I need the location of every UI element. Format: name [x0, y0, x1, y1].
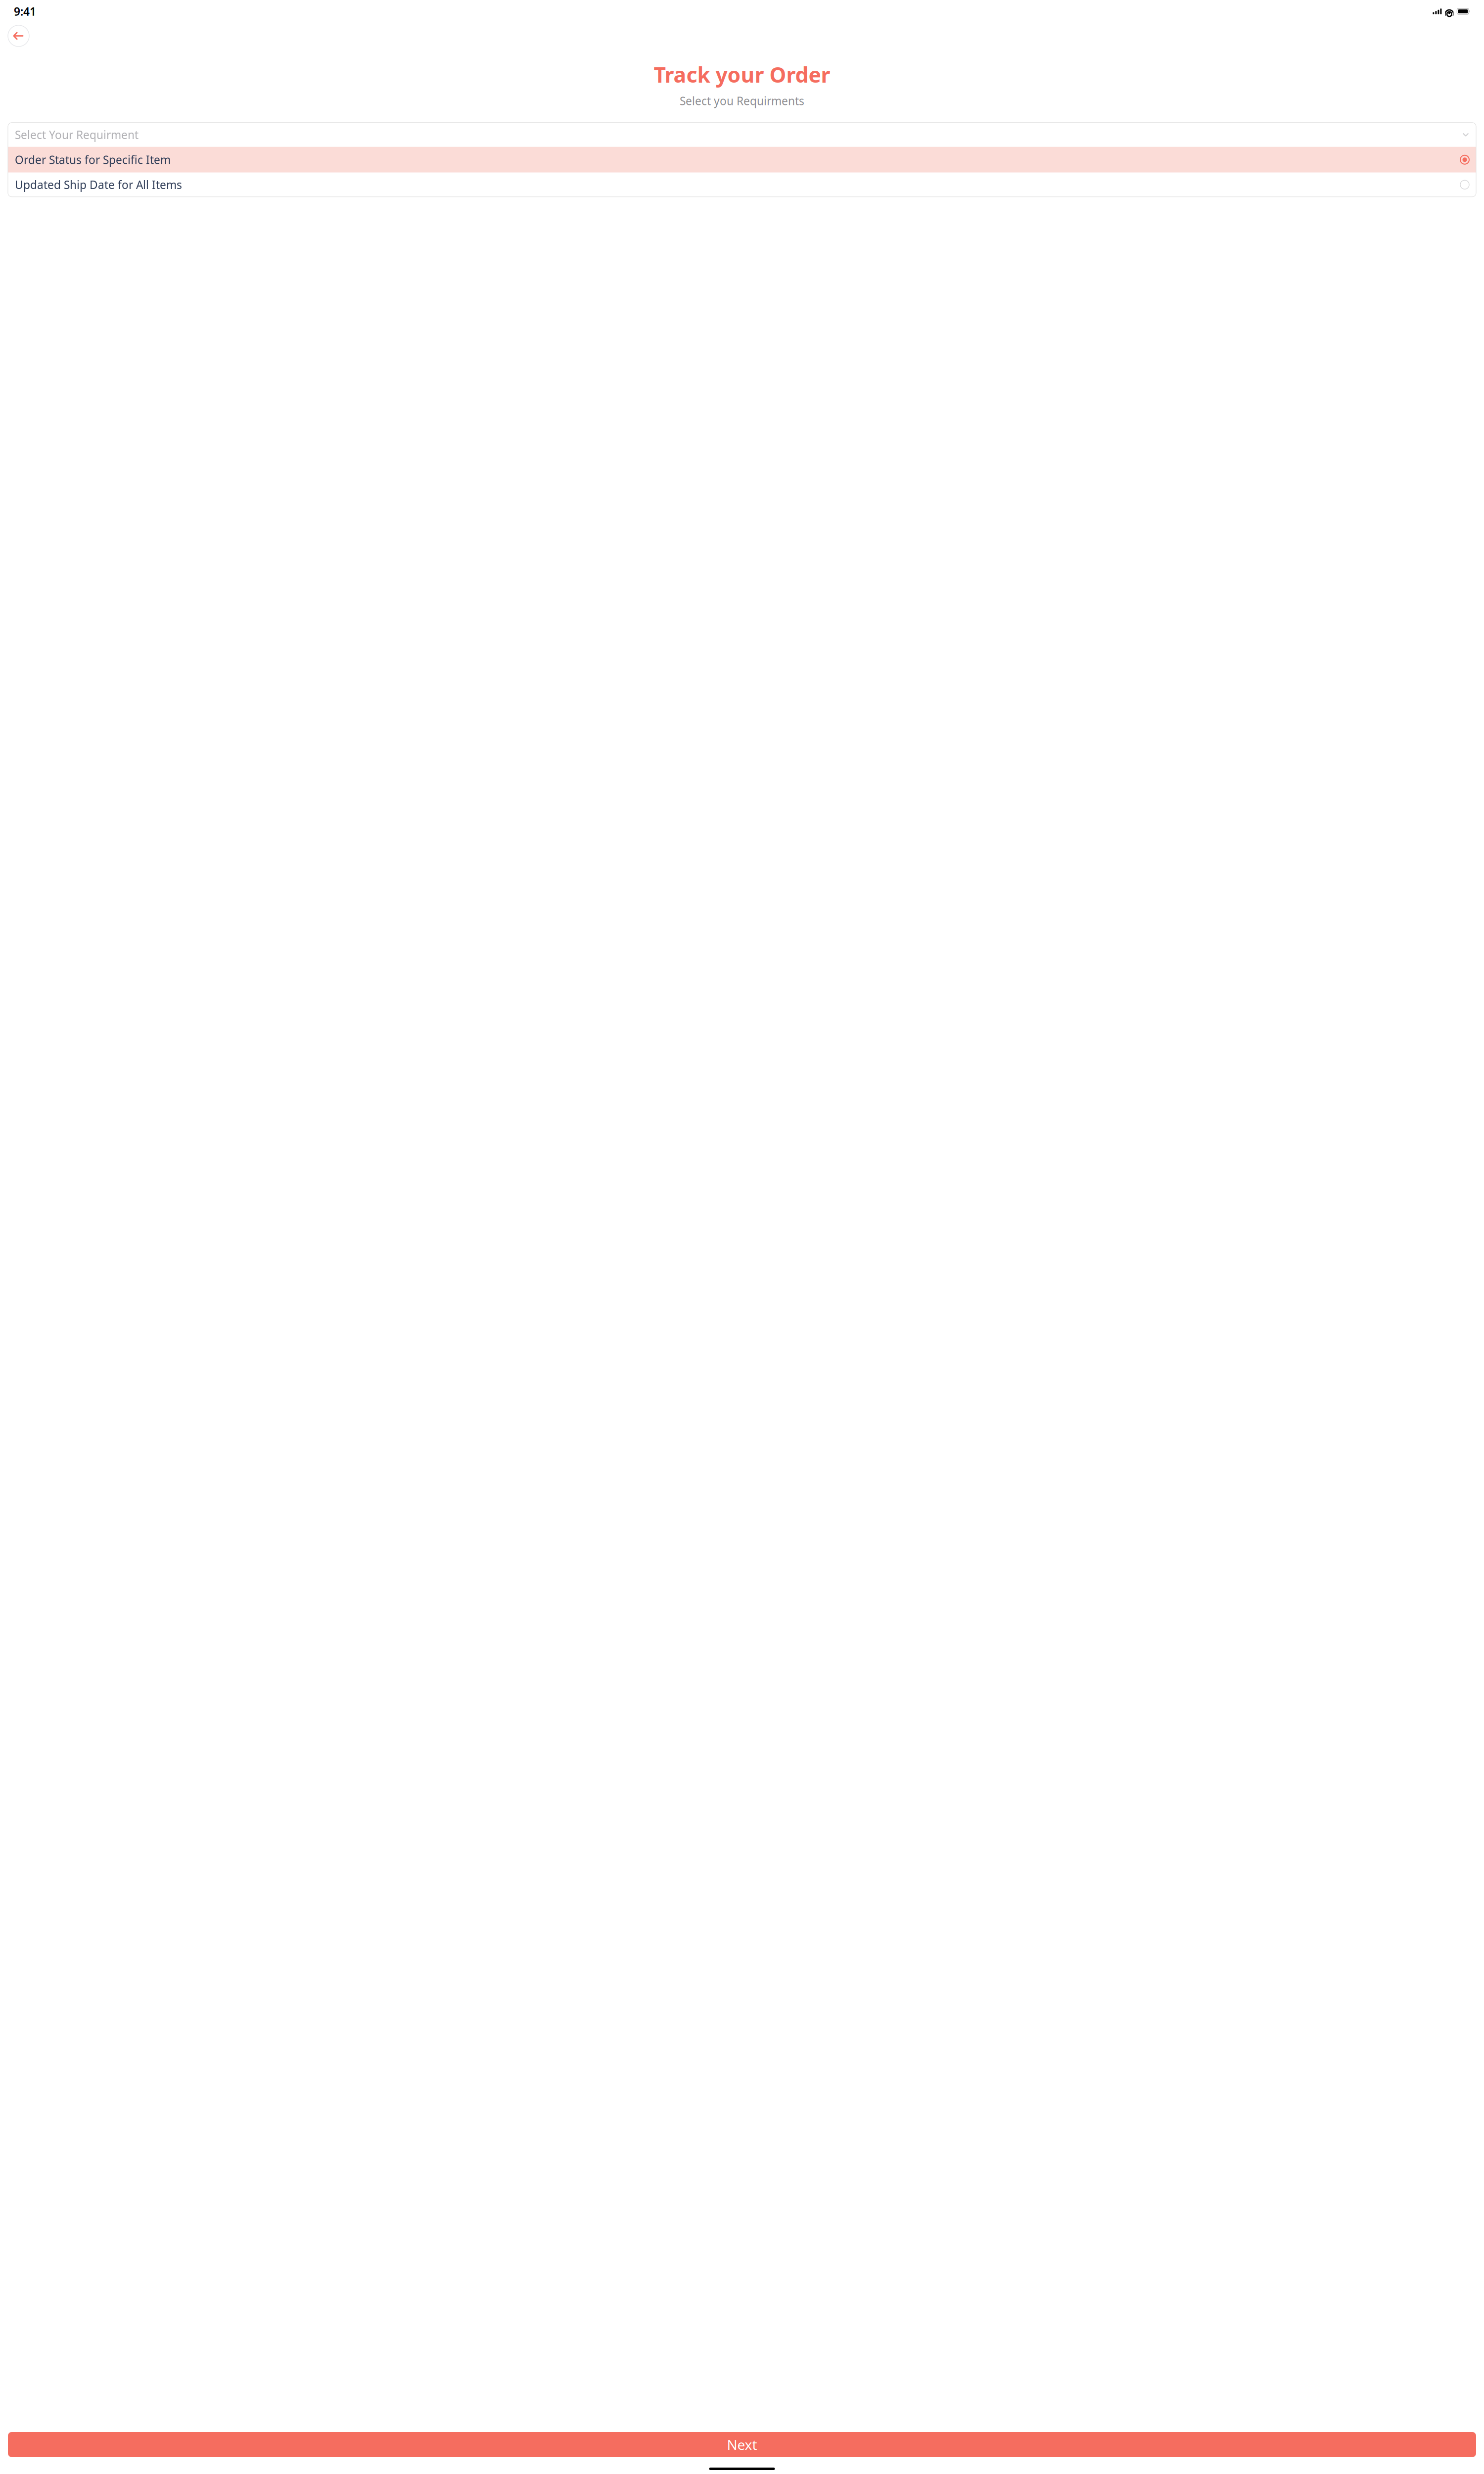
button[interactable]: Next [8, 2432, 1476, 2457]
staticText: 9:41 [14, 4, 36, 19]
button[interactable]: Back [8, 25, 29, 47]
button[interactable]: Order Status for Specific Item [8, 147, 1476, 173]
staticText: Order Status for Specific Item [15, 152, 171, 167]
button[interactable]: Updated Ship Date for All Items [8, 173, 1476, 197]
staticText: Select Your Requirment [15, 127, 139, 142]
staticText: Updated Ship Date for All Items [15, 177, 182, 192]
staticText: Select you Requirments [680, 93, 804, 108]
staticText: Track your Order [654, 60, 830, 88]
button[interactable]: Select Your Requirment [8, 123, 1476, 147]
staticText: Next [727, 2435, 757, 2454]
